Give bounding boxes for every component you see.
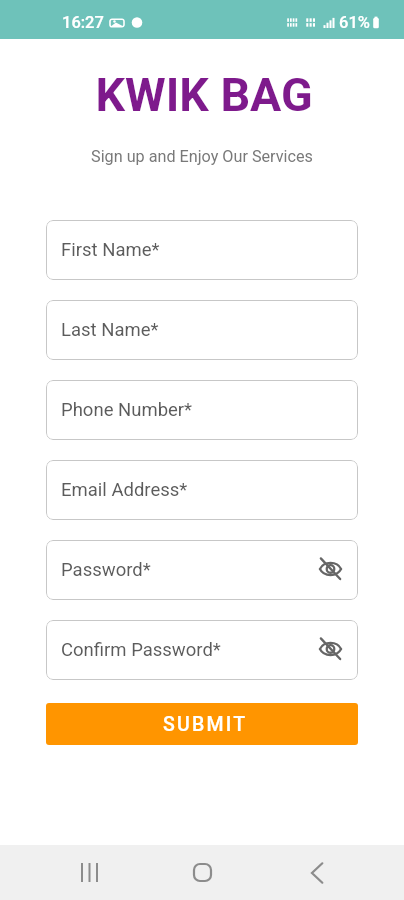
button[interactable]: Email Address* — [46, 460, 358, 520]
button[interactable]: Last Name* — [46, 300, 358, 360]
staticText: Confirm Password* — [61, 639, 221, 661]
button[interactable]: Back — [289, 845, 344, 900]
staticText: Phone Number* — [61, 399, 193, 421]
staticText: 61% — [339, 13, 370, 32]
button[interactable]: Toggle password visibility — [317, 635, 343, 661]
button[interactable]: SUBMIT — [46, 703, 358, 745]
staticText: SUBMIT — [163, 713, 248, 736]
button[interactable]: Home — [175, 845, 230, 900]
staticText: Sign up and Enjoy Our Services — [0, 147, 404, 166]
staticText: Password* — [61, 559, 151, 581]
staticText: KWIK BAG — [2, 68, 404, 122]
staticText: Email Address* — [61, 479, 188, 501]
button[interactable]: Toggle password visibility — [317, 555, 343, 581]
staticText: First Name* — [61, 239, 160, 261]
button[interactable]: Phone Number* — [46, 380, 358, 440]
button[interactable]: Confirm Password* — [46, 620, 358, 680]
button[interactable]: Password* — [46, 540, 358, 600]
staticText: 16:27 — [62, 13, 104, 32]
button[interactable]: First Name* — [46, 220, 358, 280]
staticText: Last Name* — [61, 319, 159, 341]
button[interactable]: Recent apps — [60, 845, 115, 900]
